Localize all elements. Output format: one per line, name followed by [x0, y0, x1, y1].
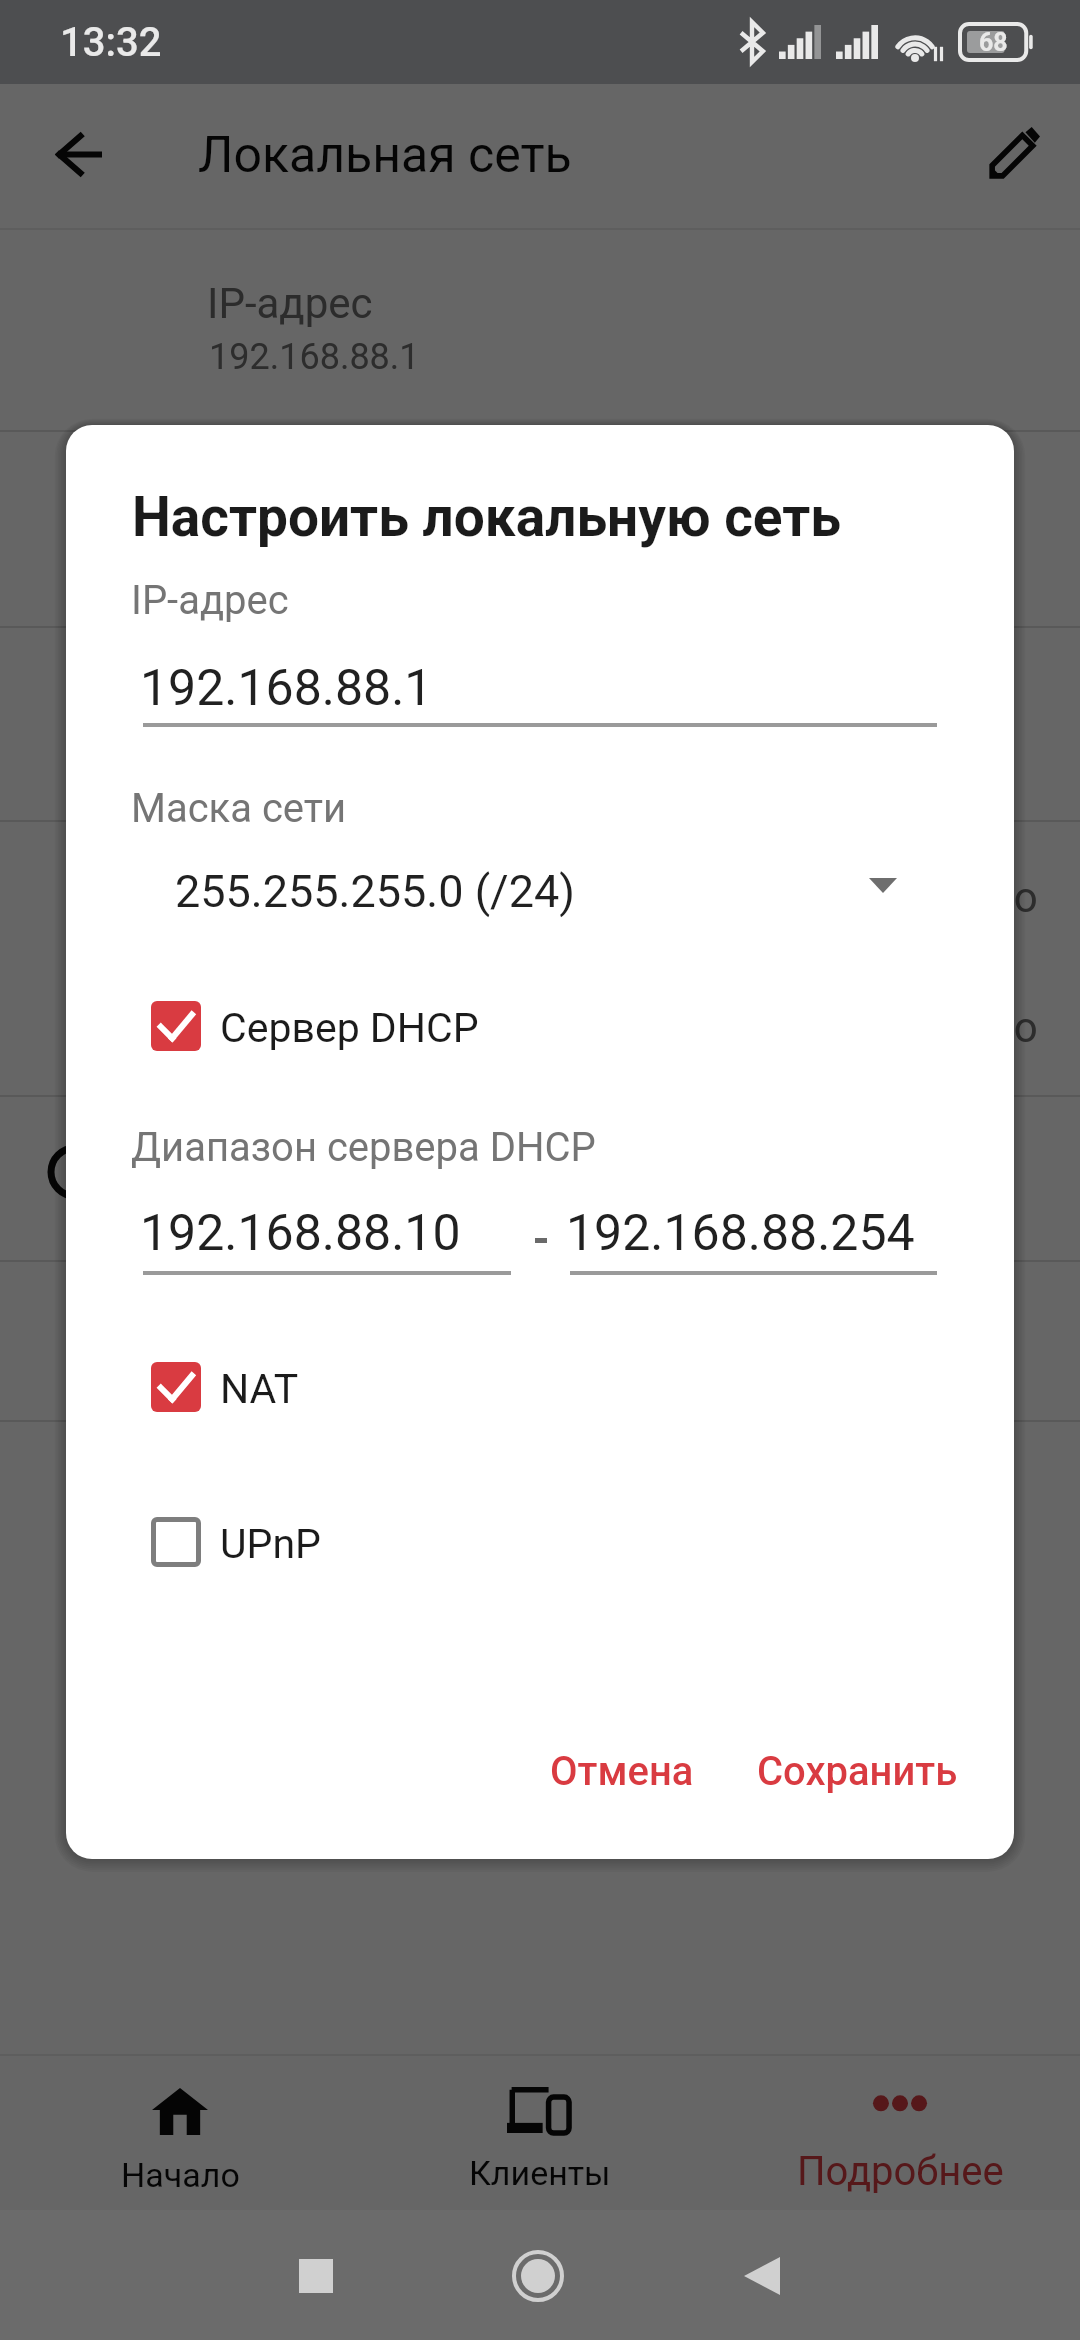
staticText: IP-адрес [131, 577, 289, 624]
staticText: 192.168.88.1 [140, 659, 433, 718]
staticText: 13:32 [60, 19, 162, 66]
staticText: UPnP [207, 996, 311, 1045]
staticText: Включено [837, 1003, 1038, 1052]
staticText: NAT [220, 1365, 299, 1413]
staticText: 255.255.255.0 (/24) [175, 865, 575, 918]
staticText: 192.168.88.10 [140, 1204, 461, 1263]
staticText: Сервер DHCP [207, 666, 472, 715]
staticText: 192.168.88.254 [566, 1204, 915, 1263]
staticText: Сервер DHCP [220, 1004, 479, 1052]
button[interactable]: Начало [0, 2056, 360, 2211]
staticText: Настроить локальную сеть [132, 485, 842, 549]
button[interactable]: Edit [972, 110, 1056, 194]
button[interactable]: Сохранить [739, 1721, 976, 1821]
button[interactable]: Отмена [532, 1721, 712, 1821]
staticText: Клиенты [469, 2153, 611, 2193]
button[interactable]: Back [37, 112, 121, 196]
staticText: Гостевая сеть [207, 1152, 481, 1201]
staticText: NAT [207, 866, 288, 915]
button[interactable]: Back [744, 2257, 780, 2295]
staticText: Подробнее [797, 2148, 1004, 2195]
staticText: Маска сети [207, 470, 433, 519]
staticText: Включено [837, 873, 1038, 922]
staticText: IP-адрес [207, 279, 373, 328]
staticText: Начало [121, 2155, 240, 2195]
staticText: Диапазон сервера DHCP [131, 1124, 596, 1171]
button[interactable]: Клиенты [360, 2056, 720, 2211]
button[interactable]: Сервер DHCP [129, 979, 689, 1073]
button[interactable]: Подробнее [720, 2056, 1080, 2211]
staticText: 255.255.255.0 (/24) [209, 525, 529, 567]
staticText: Сохранить [757, 1748, 958, 1795]
staticText: 192.168.88.10 - 192.168.88.254 [209, 721, 719, 763]
button[interactable]: 255.255.255.0 (/24) [134, 843, 940, 925]
button[interactable]: NAT [129, 1340, 689, 1434]
button[interactable]: Home [512, 2250, 564, 2302]
staticText: UPnP [220, 1520, 321, 1568]
staticText: 192.168.88.1 [209, 336, 420, 378]
staticText: 68 [979, 28, 1008, 57]
staticText: Маска сети [131, 785, 347, 832]
staticText: Локальная сеть [198, 126, 572, 185]
button[interactable]: UPnP [129, 1495, 689, 1589]
staticText: Отмена [550, 1748, 694, 1795]
